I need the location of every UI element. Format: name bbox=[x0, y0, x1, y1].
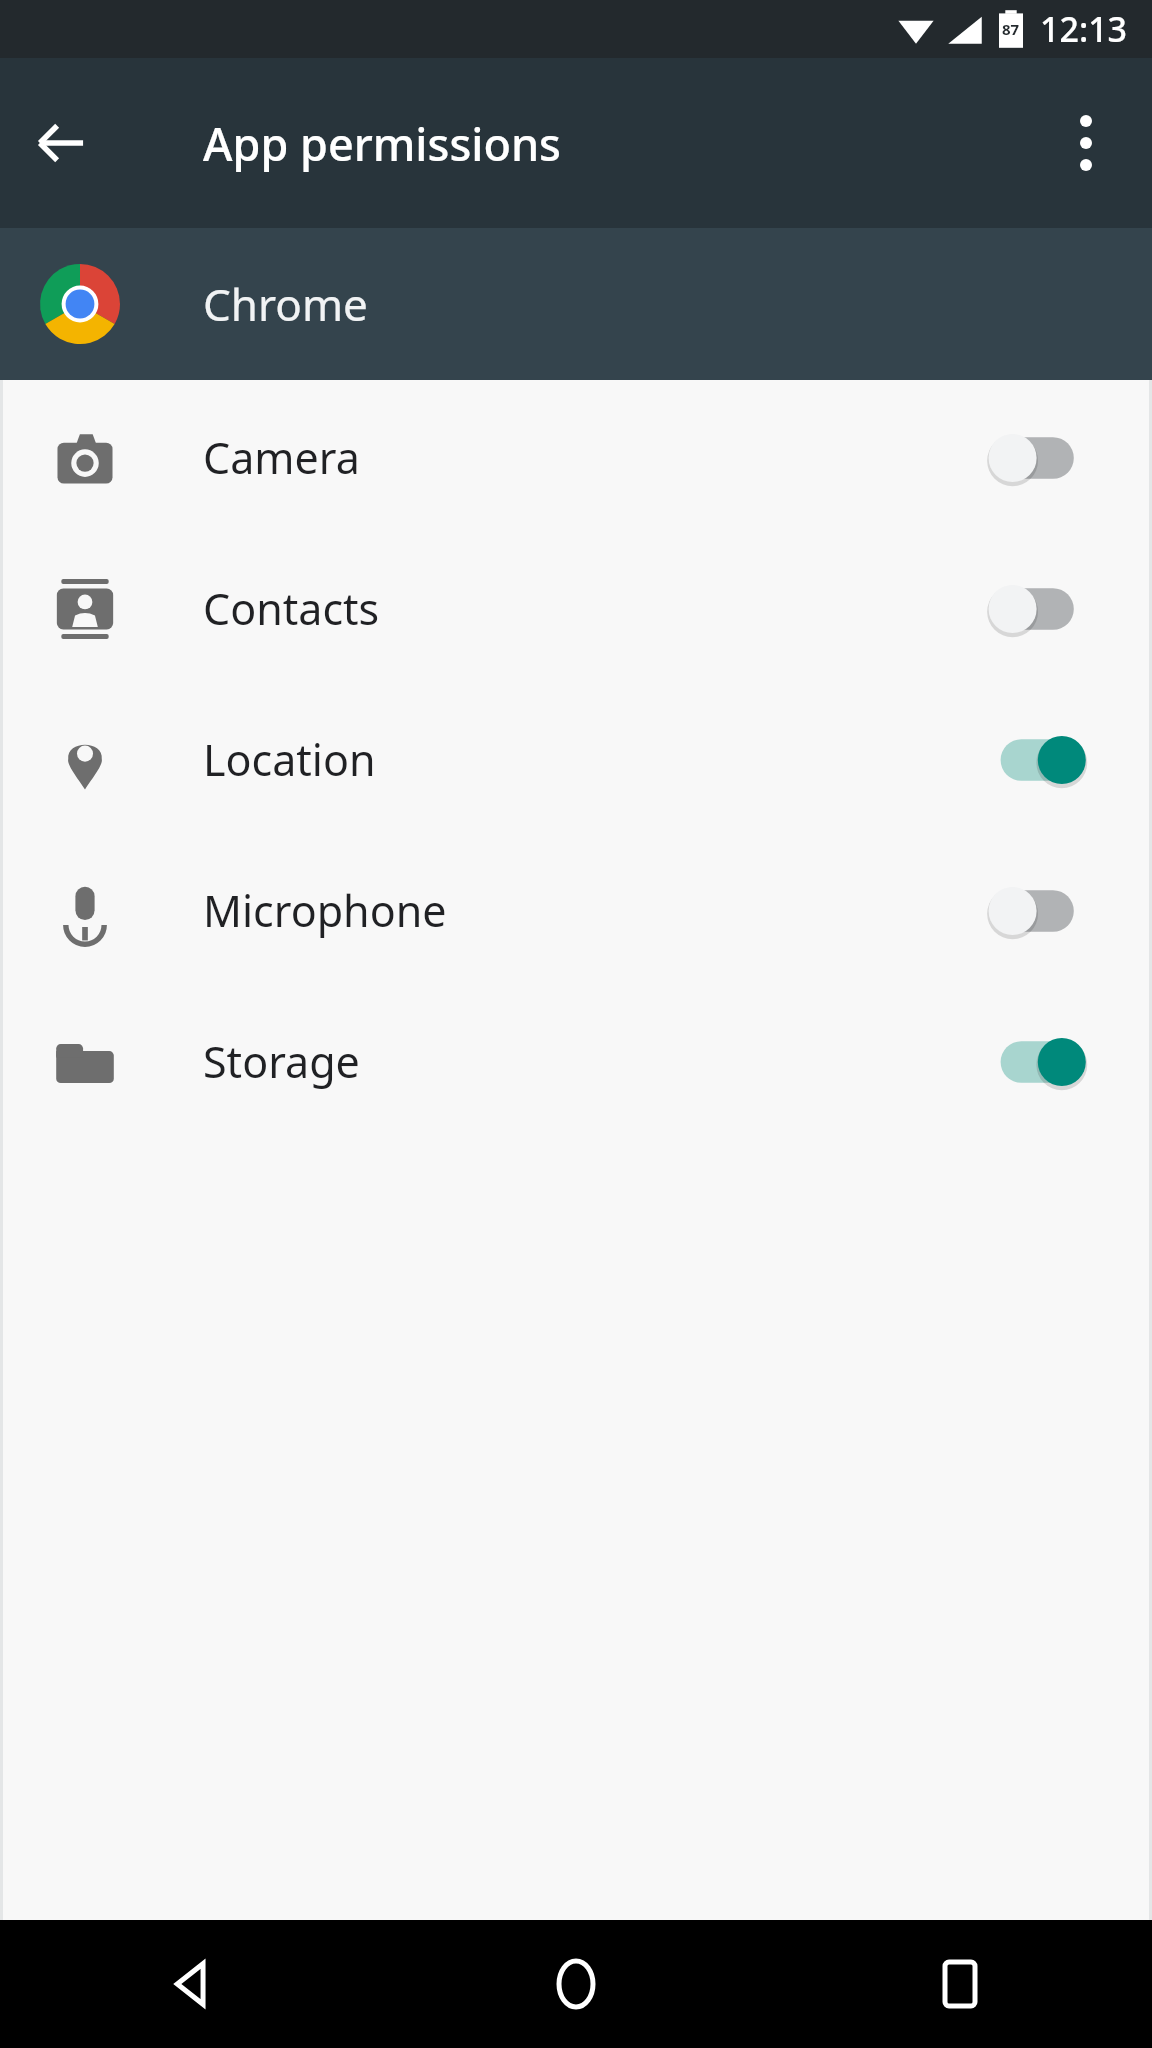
button[interactable]: More options bbox=[1042, 99, 1130, 187]
staticText: 12:13 bbox=[1040, 6, 1128, 52]
staticText: Chrome bbox=[203, 274, 368, 334]
button[interactable]: Microphone permission toggle bbox=[974, 866, 1104, 956]
staticText: 87 bbox=[1002, 19, 1020, 39]
staticText: Microphone bbox=[203, 881, 447, 940]
button[interactable]: Storage bbox=[0, 986, 1152, 1137]
button[interactable]: Back bbox=[16, 98, 106, 188]
button[interactable]: Home bbox=[384, 1920, 768, 2048]
button[interactable]: Location permission toggle bbox=[974, 715, 1104, 805]
staticText: App permissions bbox=[203, 113, 561, 174]
button[interactable]: Recent apps bbox=[768, 1920, 1152, 2048]
staticText: Camera bbox=[203, 428, 360, 487]
staticText: Location bbox=[203, 730, 376, 789]
button[interactable]: Back bbox=[0, 1920, 384, 2048]
staticText: Contacts bbox=[203, 579, 380, 638]
button[interactable]: Storage permission toggle bbox=[974, 1017, 1104, 1107]
staticText: Storage bbox=[203, 1032, 360, 1091]
button[interactable]: Microphone bbox=[0, 835, 1152, 986]
button[interactable]: Contacts bbox=[0, 533, 1152, 684]
button[interactable]: Chrome bbox=[0, 228, 1152, 380]
button[interactable]: Camera bbox=[0, 382, 1152, 533]
button[interactable]: Location bbox=[0, 684, 1152, 835]
button[interactable]: Contacts permission toggle bbox=[974, 564, 1104, 654]
button[interactable]: Camera permission toggle bbox=[974, 413, 1104, 503]
